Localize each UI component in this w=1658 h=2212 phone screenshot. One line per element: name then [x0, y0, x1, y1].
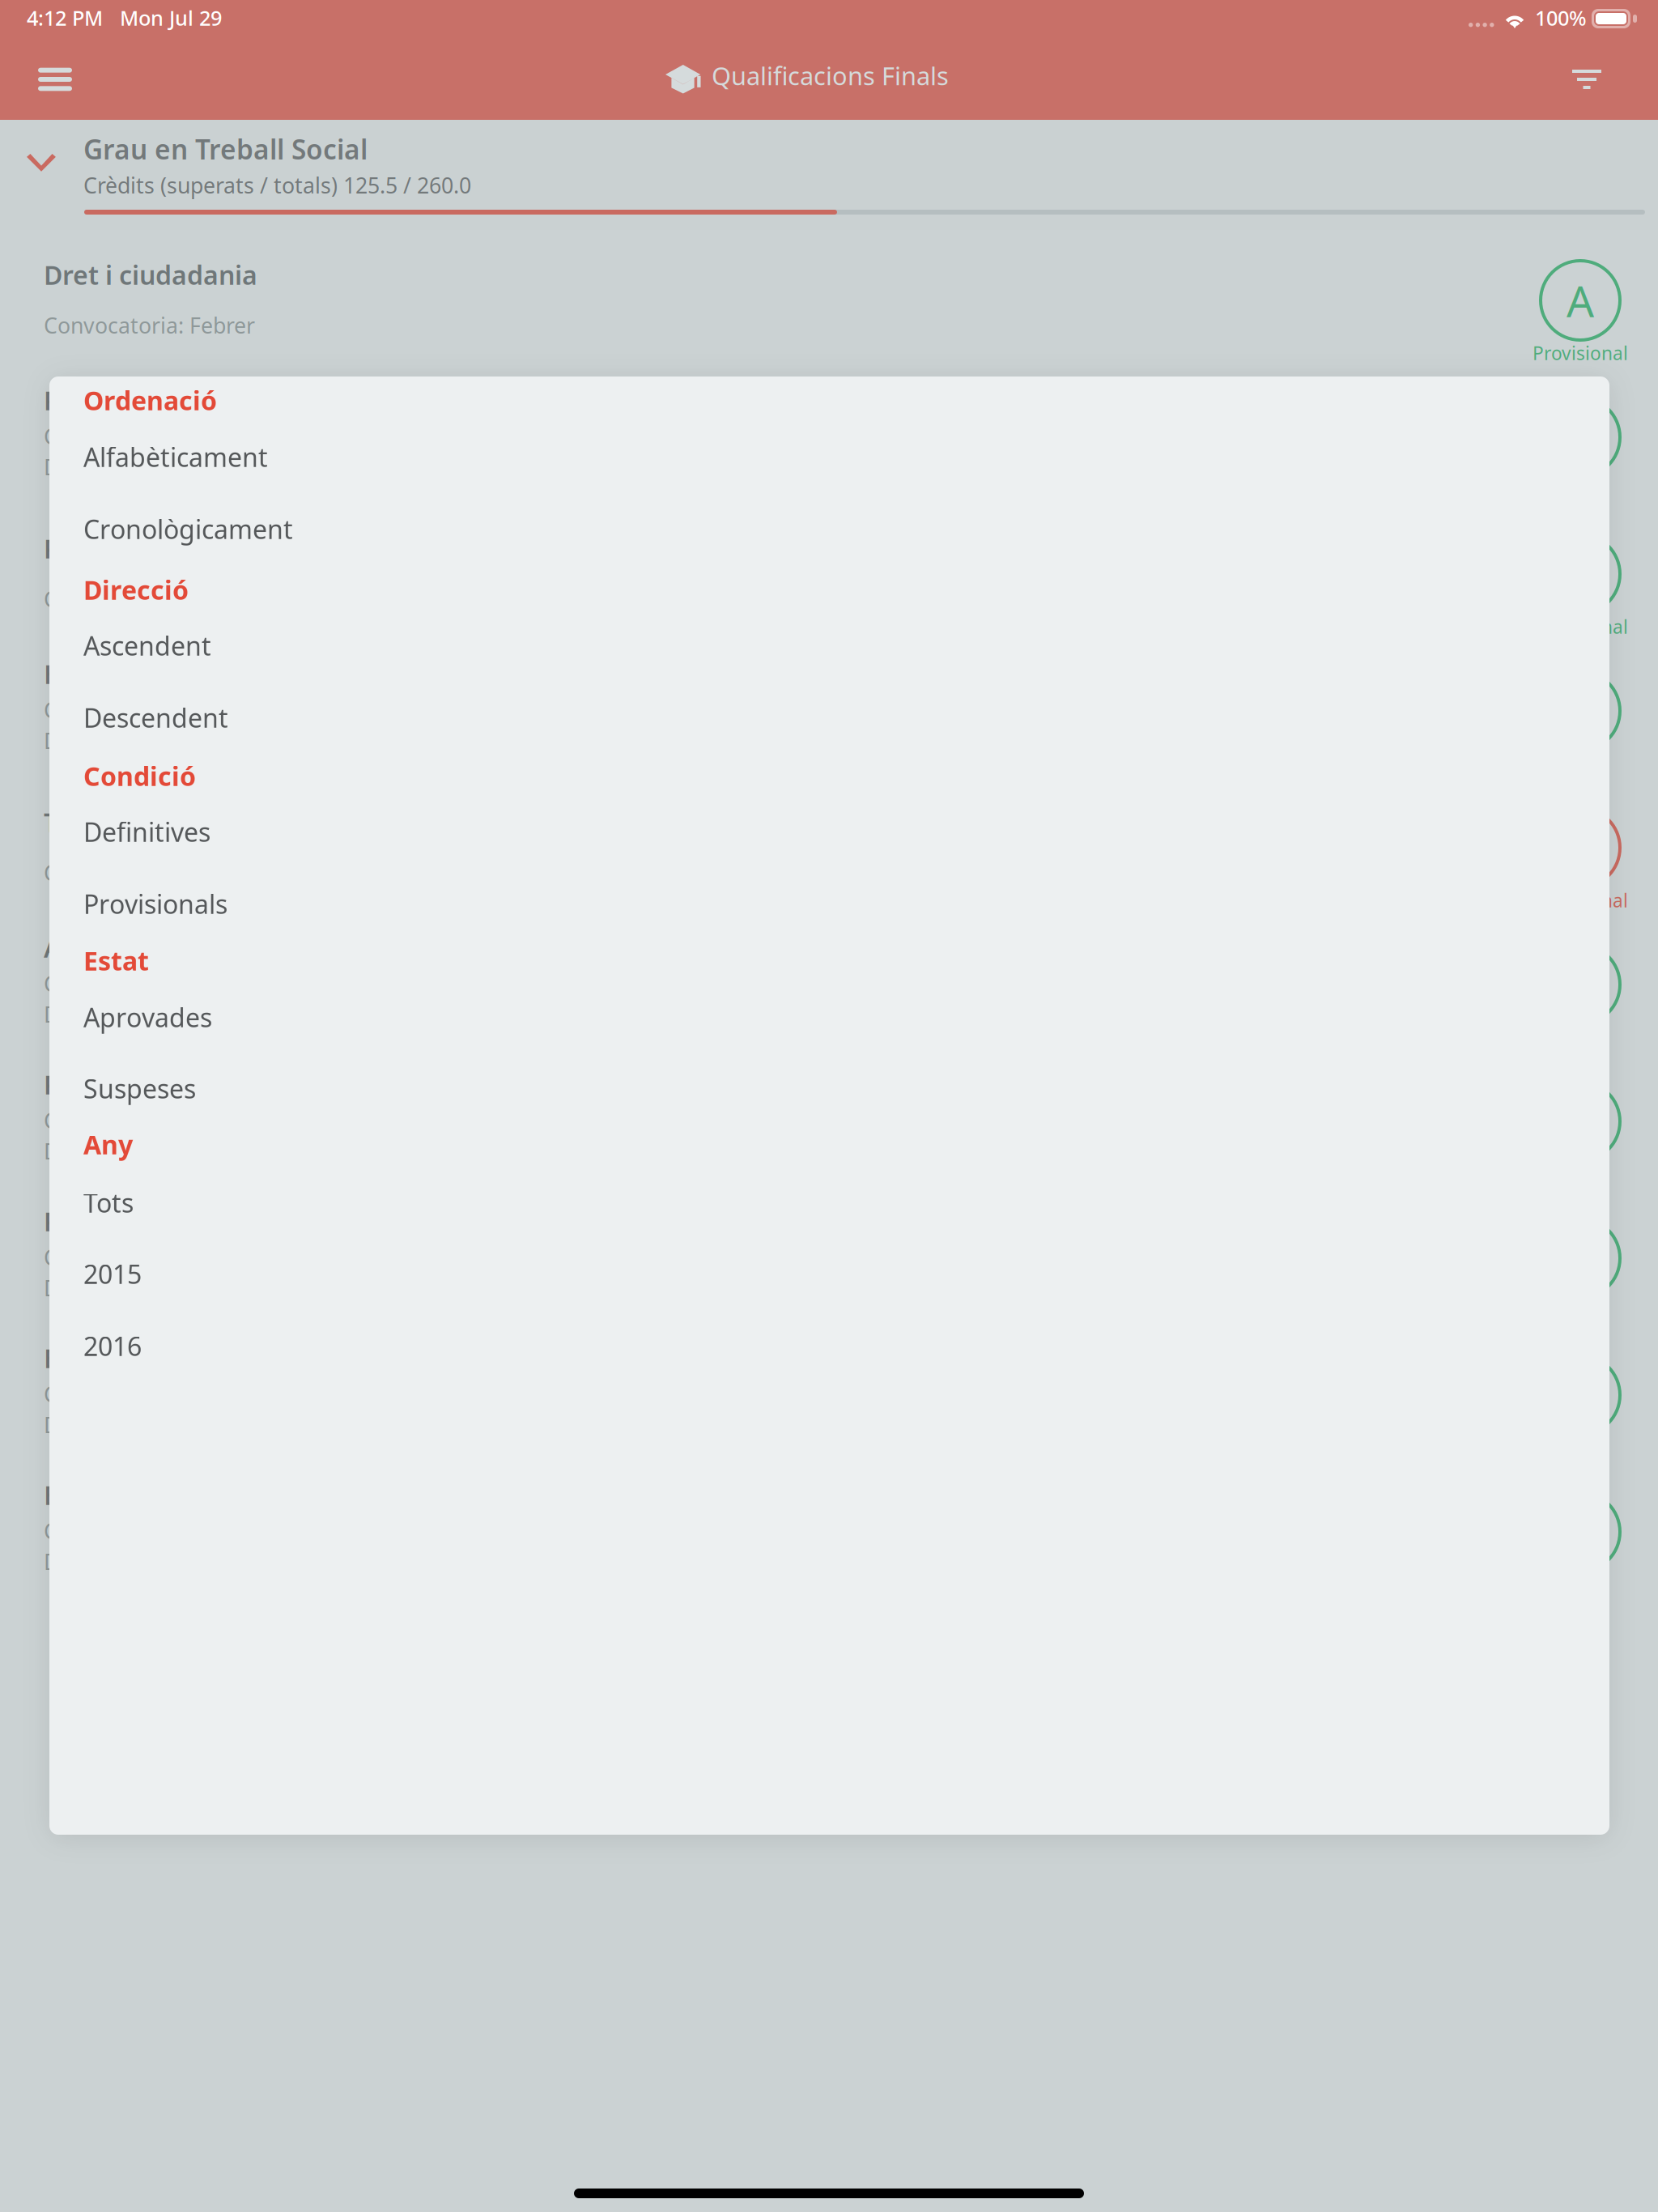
- staticText: Convocatoria: Juny: [44, 969, 232, 998]
- staticText: Alfabèticament: [83, 440, 268, 474]
- staticText: Direcció: [83, 572, 189, 607]
- staticText: Convocatoria: Febrer: [44, 585, 255, 613]
- staticText: Pedagogia social: [44, 1204, 257, 1238]
- button[interactable]: Psicologia evolutiva: [0, 1051, 1658, 1187]
- staticText: Convocatoria: Febrer: [44, 858, 255, 887]
- staticText: Definitiva: 09/06/2016: [44, 1547, 265, 1576]
- staticText: Convocatoria: Juny: [44, 1243, 232, 1271]
- button[interactable]: Ascendent: [49, 610, 1609, 682]
- staticText: Ascendent: [83, 628, 211, 663]
- staticText: Dret i ciudadania: [44, 257, 257, 292]
- button[interactable]: Psicologia social: [0, 504, 1658, 640]
- staticText: 4:12 PM Mon Jul 29: [27, 4, 222, 31]
- staticText: Tots: [83, 1185, 134, 1220]
- staticText: Definitiva: 14/06/2016: [44, 1410, 265, 1439]
- staticText: Estadística social: [44, 1478, 258, 1512]
- button[interactable]: Provisionals: [49, 868, 1609, 940]
- staticText: Definitiva: 12/07/2016: [44, 453, 265, 481]
- button[interactable]: Treball social i salut: [0, 777, 1658, 913]
- button[interactable]: Economia aplicada: [0, 1325, 1658, 1461]
- staticText: Definitiva: 18/06/2016: [44, 1274, 265, 1302]
- staticText: Any: [83, 1127, 133, 1161]
- button[interactable]: Pedagogia social: [0, 1188, 1658, 1324]
- staticText: Polítiques socials: [44, 383, 261, 417]
- staticText: Estat: [83, 943, 149, 978]
- staticText: 2016: [83, 1329, 142, 1363]
- staticText: Convocatoria: Febrer: [44, 311, 255, 340]
- staticText: Definitiva: 01/07/2016: [44, 1000, 265, 1029]
- button[interactable]: Aprovades: [49, 981, 1609, 1053]
- button[interactable]: Antropologia social: [0, 914, 1658, 1050]
- staticText: Aprovades: [83, 1000, 212, 1034]
- staticText: 2015: [83, 1257, 142, 1291]
- staticText: Provisional: [1533, 615, 1628, 639]
- button[interactable]: Tots: [49, 1167, 1609, 1239]
- staticText: Provisional: [1533, 888, 1628, 913]
- button[interactable]: Habilitats socials: [0, 640, 1658, 776]
- staticText: Convocatoria: Juny: [44, 1106, 232, 1135]
- staticText: Convocatoria: Juny: [44, 1380, 232, 1408]
- staticText: Economia aplicada: [44, 1341, 280, 1375]
- button[interactable]: Suspeses: [49, 1053, 1609, 1125]
- staticText: Condició: [83, 759, 196, 793]
- staticText: 100%: [1535, 4, 1587, 31]
- staticText: Suspeses: [83, 1071, 196, 1106]
- button[interactable]: Estadística social: [0, 1461, 1658, 1597]
- staticText: Grau en Treball Social: [83, 131, 368, 167]
- staticText: Ordenació: [83, 383, 217, 417]
- staticText: Provisional: [1533, 341, 1628, 365]
- button[interactable]: Filter and sort: [1548, 40, 1626, 118]
- staticText: Convocatoria: Juny: [44, 696, 232, 724]
- staticText: A: [1567, 272, 1594, 329]
- staticText: Definitiva: 05/07/2016: [44, 726, 265, 755]
- button[interactable]: Definitives: [49, 796, 1609, 868]
- staticText: Definitives: [83, 815, 210, 849]
- button[interactable]: 2016: [49, 1310, 1609, 1382]
- button[interactable]: Polítiques socials: [0, 367, 1658, 503]
- staticText: Convocatoria: Juny: [44, 1516, 232, 1545]
- staticText: Cronològicament: [83, 512, 293, 546]
- staticText: Descendent: [83, 700, 228, 735]
- staticText: Definitiva: 22/06/2016: [44, 1137, 265, 1165]
- button[interactable]: Alfabèticament: [49, 421, 1609, 493]
- staticText: Convocatoria: Juny: [44, 422, 232, 450]
- staticText: Habilitats socials: [44, 657, 257, 691]
- staticText: Psicologia social: [44, 531, 250, 566]
- button[interactable]: Menu: [16, 40, 94, 118]
- staticText: Crèdits (superats / totals) 125.5 / 260.…: [83, 171, 471, 200]
- staticText: Treball social i salut: [44, 805, 291, 839]
- button[interactable]: Cronològicament: [49, 493, 1609, 565]
- button[interactable]: 2015: [49, 1238, 1609, 1310]
- staticText: Provisionals: [83, 887, 227, 921]
- staticText: Qualificacions Finals: [712, 59, 949, 92]
- staticText: Psicologia evolutiva: [44, 1067, 295, 1102]
- staticText: Antropologia social: [44, 930, 288, 965]
- button[interactable]: Dret i ciudadania: [0, 230, 1658, 366]
- button[interactable]: Descendent: [49, 682, 1609, 754]
- button[interactable]: Grau en Treball Social: [0, 120, 1658, 230]
